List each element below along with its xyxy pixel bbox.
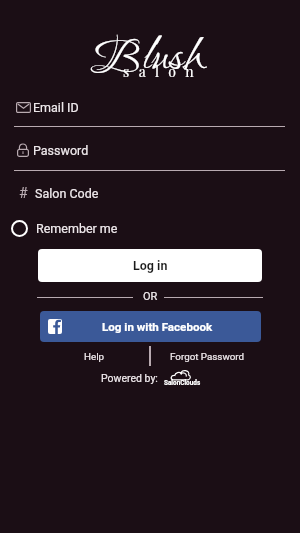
staticText: salon [123,62,204,81]
button[interactable]: Forgot Password [152,346,262,366]
staticText: Log in with Facebook [102,320,213,334]
other: SalonClouds [171,370,190,380]
staticText: Password [33,143,89,158]
staticText: SalonClouds [164,379,201,387]
staticText: Log in [133,258,168,273]
button[interactable]: Remember me [0,216,118,240]
staticText: Forgot Password [170,351,245,362]
staticText: Blush [70,32,226,80]
button[interactable]: Log in with Facebook [40,311,261,342]
button[interactable]: Help [40,346,148,366]
button[interactable]: Log in [38,249,262,282]
staticText: Remember me [36,221,118,236]
button[interactable]: Email ID [0,94,300,120]
staticText: Email ID [33,100,79,115]
staticText: Help [84,351,105,362]
staticText: Salon Code [35,186,99,201]
staticText: OR [143,290,158,303]
staticText: # [19,185,28,201]
staticText: Powered by: [101,372,158,384]
button[interactable]: Password [0,137,300,163]
button[interactable]: # [0,180,300,206]
